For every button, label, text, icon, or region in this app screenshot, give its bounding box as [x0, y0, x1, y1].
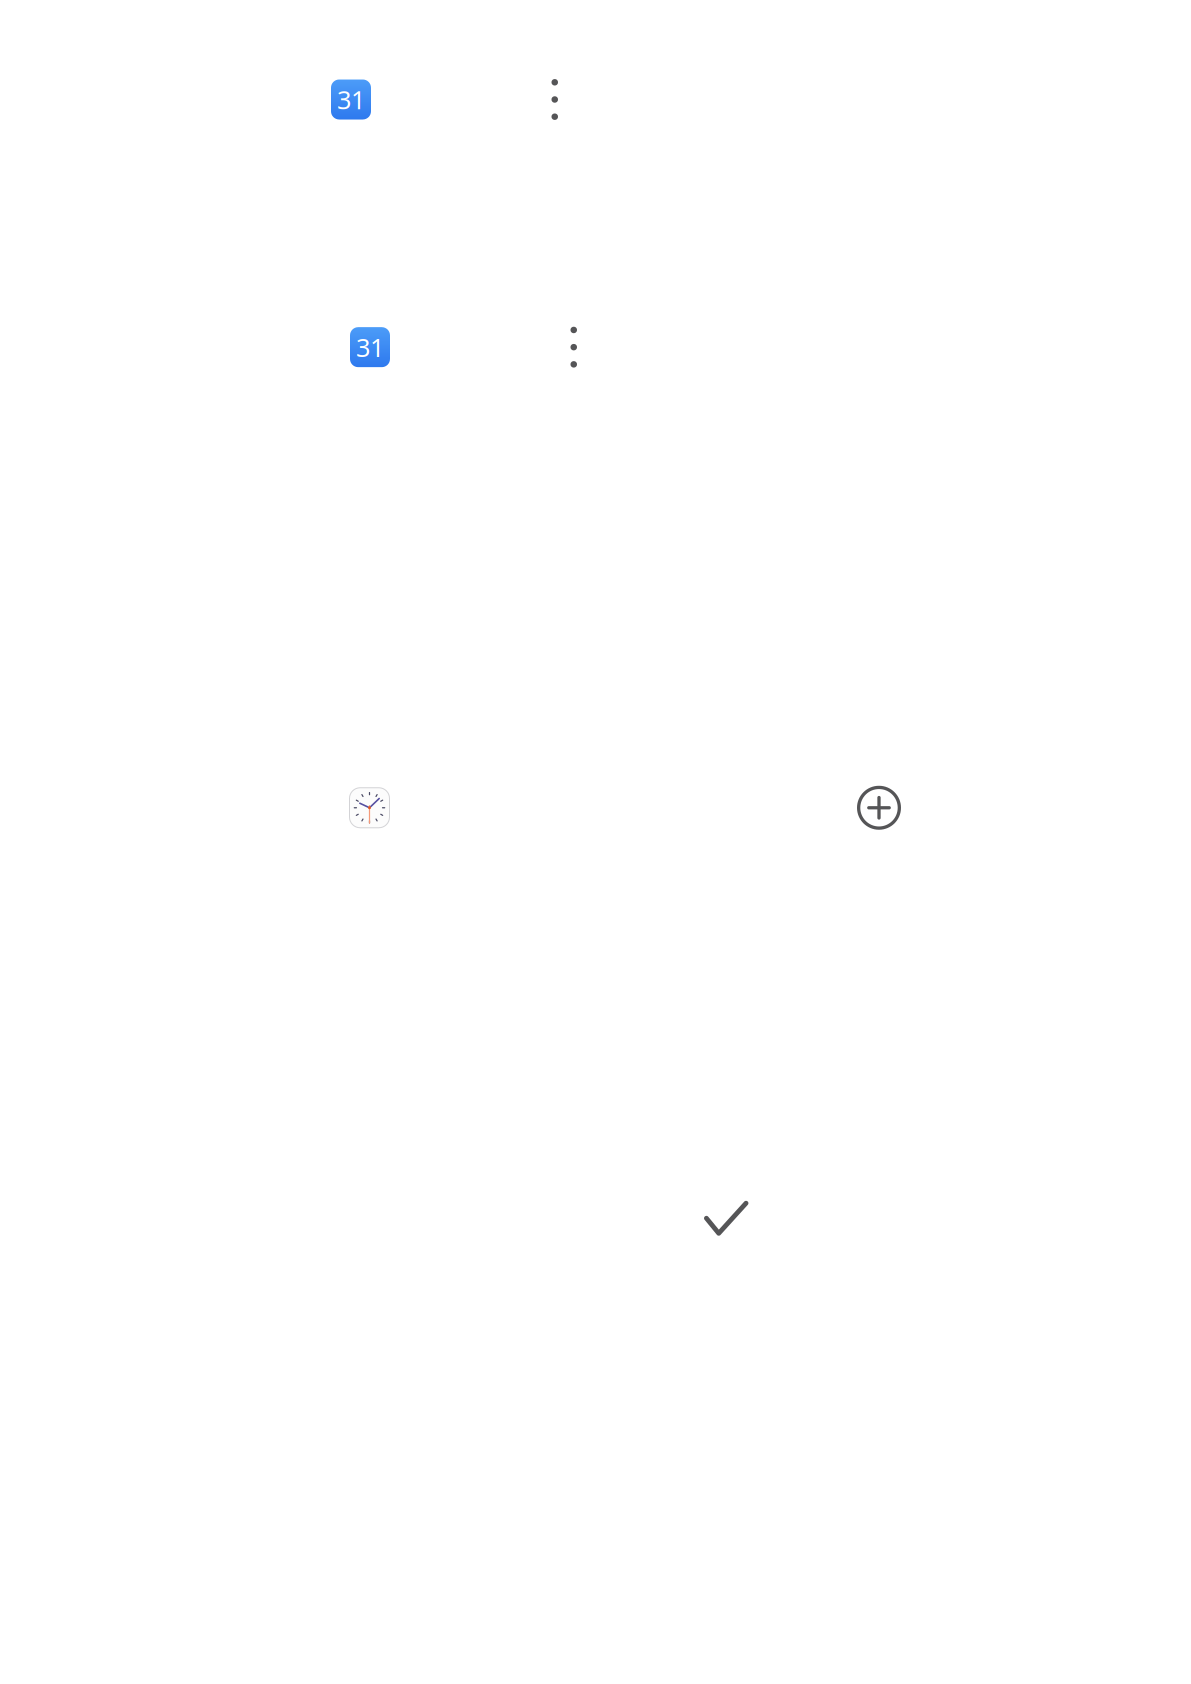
button[interactable]: Clock [349, 786, 390, 830]
button[interactable]: Time of Day trigger [0, 0, 1191, 193]
staticText: 31 [337, 83, 365, 116]
button[interactable]: Find Calendar Events action [0, 193, 1191, 406]
button[interactable]: Done [0, 830, 1191, 1236]
staticText: 31 [356, 330, 384, 364]
button[interactable]: Trigger options [536, 79, 558, 120]
button[interactable]: Action options [555, 327, 577, 368]
button[interactable]: Add action [857, 786, 901, 830]
